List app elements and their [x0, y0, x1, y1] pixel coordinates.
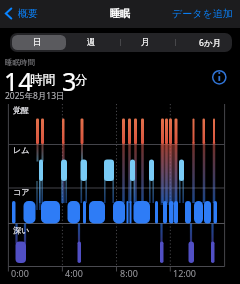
staticText: 分 [75, 72, 88, 88]
button[interactable]: 月 [121, 35, 175, 50]
button[interactable]: 週 [66, 35, 120, 50]
staticText: 深い [13, 225, 30, 235]
staticText: 6か月 [199, 37, 222, 49]
button[interactable]: 概要 [3, 5, 40, 22]
staticText: 睡眠時間 [5, 58, 35, 67]
staticText: 12:00 [173, 267, 197, 279]
staticText: 週 [87, 37, 96, 48]
staticText: 3 [62, 64, 77, 98]
staticText: 覚醒 [13, 105, 29, 115]
staticText: レム [13, 145, 30, 155]
staticText: データを追加 [172, 7, 233, 20]
staticText: 概要 [18, 7, 38, 20]
staticText: コア [13, 187, 30, 197]
button[interactable]: 6か月 [176, 35, 230, 50]
staticText: 14 [4, 64, 33, 98]
button[interactable]: 日 [12, 35, 66, 50]
staticText: 4:00 [65, 267, 83, 279]
staticText: 睡眠 [110, 7, 130, 20]
staticText: 2025年8月13日 [5, 90, 65, 102]
staticText: 日 [33, 37, 42, 48]
staticText: 0:00 [11, 267, 29, 279]
button[interactable]: データを追加 [170, 5, 235, 22]
staticText: 月 [141, 37, 150, 48]
button[interactable] [210, 68, 229, 87]
staticText: 時間 [30, 72, 55, 88]
staticText: 8:00 [120, 267, 138, 279]
